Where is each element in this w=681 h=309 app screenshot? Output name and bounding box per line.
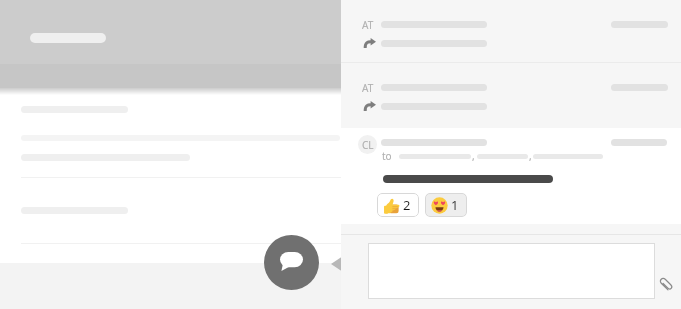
button[interactable]: CL (341, 128, 681, 224)
button[interactable]: Thumbs up reaction (377, 193, 419, 217)
staticText: CL (362, 138, 374, 152)
staticText: 1 (451, 196, 459, 214)
button[interactable]: Love reaction (425, 193, 467, 217)
staticText: AT (362, 18, 374, 32)
button[interactable]: Open chat (264, 235, 319, 290)
staticText: , (529, 149, 532, 163)
button[interactable]: AT (341, 0, 681, 62)
button[interactable]: Collapse panel (331, 256, 343, 272)
staticText: to (382, 149, 392, 163)
button[interactable]: Attach file (659, 277, 673, 291)
staticText: , (472, 149, 475, 163)
button[interactable]: AT (341, 63, 681, 125)
staticText: 2 (403, 196, 411, 214)
staticText: AT (362, 81, 374, 95)
button[interactable] (368, 243, 655, 299)
